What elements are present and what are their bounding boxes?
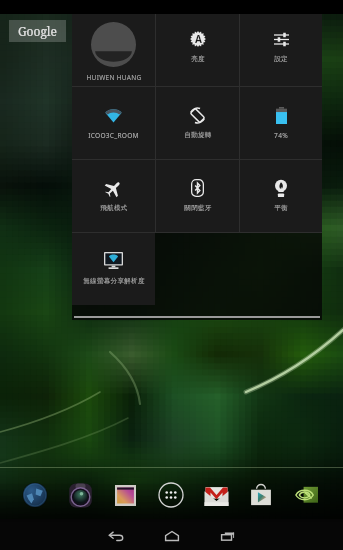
staticText: 設定 xyxy=(274,55,288,63)
button[interactable]: Play Store xyxy=(243,477,279,513)
button[interactable]: Gallery xyxy=(107,477,143,513)
button[interactable]: Recents xyxy=(214,522,242,550)
staticText: 平衡 xyxy=(274,204,288,212)
button[interactable]: 設定 xyxy=(240,14,322,86)
button[interactable]: HUIWEN HUANG xyxy=(72,14,155,86)
staticText: ICOO3C_ROOM xyxy=(88,131,139,140)
button[interactable]: Back xyxy=(102,522,130,550)
button[interactable]: 無線螢幕分享解析度 xyxy=(72,233,155,305)
staticText: 無線螢幕分享解析度 xyxy=(83,277,145,285)
staticText: A xyxy=(195,32,202,46)
button[interactable]: 關閉藍牙 xyxy=(156,160,239,232)
staticText: 自動旋轉 xyxy=(184,131,212,139)
button[interactable]: 74% xyxy=(240,87,322,159)
staticText: 亮度 xyxy=(191,55,205,63)
button[interactable]: Gmail xyxy=(198,477,234,513)
button[interactable]: Google xyxy=(9,20,66,42)
button[interactable]: All apps xyxy=(153,477,189,513)
button[interactable]: 飛航模式 xyxy=(72,160,155,232)
button[interactable]: A xyxy=(156,14,239,86)
button[interactable]: Home xyxy=(158,522,186,550)
staticText: 飛航模式 xyxy=(100,204,128,212)
button[interactable]: Nvidia xyxy=(288,477,324,513)
button[interactable]: ICOO3C_ROOM xyxy=(72,87,155,159)
button[interactable]: Browser xyxy=(17,477,53,513)
staticText: 關閉藍牙 xyxy=(184,204,212,212)
button[interactable]: 自動旋轉 xyxy=(156,87,239,159)
button[interactable]: Camera xyxy=(62,477,98,513)
staticText: HUIWEN HUANG xyxy=(86,73,142,82)
staticText: 74% xyxy=(274,131,288,140)
button[interactable]: 平衡 xyxy=(240,160,322,232)
staticText: Google xyxy=(18,23,58,39)
